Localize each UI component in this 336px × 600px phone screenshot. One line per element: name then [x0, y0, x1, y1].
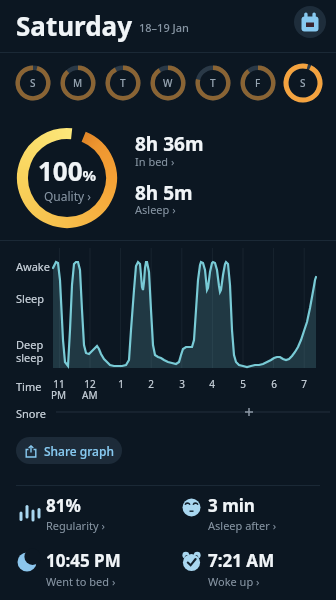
staticText: 3 min [208, 494, 255, 517]
staticText: 6 [271, 377, 277, 391]
staticText: Regularity › [46, 518, 105, 533]
staticText: Sleep [16, 291, 45, 306]
staticText: W [163, 76, 173, 90]
button[interactable]: M [58, 63, 98, 103]
staticText: 7:21 AM [208, 549, 275, 572]
staticText: 18–19 Jan [139, 20, 189, 35]
staticText: In bed › [135, 154, 175, 169]
staticText: Quality › [44, 188, 92, 204]
staticText: 81% [46, 494, 81, 517]
button[interactable] [16, 547, 156, 591]
button[interactable]: S [283, 63, 323, 103]
staticText: 12 [84, 377, 96, 391]
staticText: Asleep › [135, 202, 176, 217]
staticText: S [30, 76, 36, 90]
staticText: Saturday [16, 8, 133, 43]
staticText: 7 [301, 377, 307, 391]
staticText: Snore [16, 406, 47, 421]
button[interactable] [135, 130, 255, 174]
staticText: Woke up › [208, 574, 260, 589]
staticText: T [210, 76, 216, 90]
staticText: 2 [148, 377, 154, 391]
button[interactable]: S [13, 63, 53, 103]
staticText: 3 [179, 377, 185, 391]
staticText: S [300, 76, 306, 90]
button[interactable]: W [148, 63, 188, 103]
staticText: F [255, 76, 261, 90]
staticText: 11 [53, 377, 65, 391]
staticText: 5 [240, 377, 246, 391]
staticText: T [120, 76, 126, 90]
staticText: 1 [118, 377, 124, 391]
staticText: 4 [209, 377, 215, 391]
button[interactable]: T [193, 63, 233, 103]
staticText: Awake [16, 259, 50, 274]
staticText: 10:45 PM [46, 549, 121, 572]
button[interactable]: Share graph [16, 437, 122, 464]
staticText: 8h 5m [135, 180, 193, 206]
button[interactable] [180, 492, 320, 536]
staticText: Time [16, 379, 42, 394]
button[interactable] [16, 492, 156, 536]
staticText: Went to bed › [46, 574, 116, 589]
staticText: Asleep after › [208, 518, 277, 533]
button[interactable]: F [238, 63, 278, 103]
staticText: 8h 36m [135, 131, 204, 157]
staticText: AM [82, 388, 98, 402]
staticText: M [73, 76, 83, 90]
button[interactable] [294, 6, 326, 38]
button[interactable] [180, 547, 320, 591]
staticText: Deep sleep [16, 337, 44, 365]
staticText: 100% [38, 153, 97, 188]
button[interactable]: 100% [17, 128, 117, 228]
staticText: PM [51, 388, 67, 402]
staticText: Share graph [44, 443, 114, 459]
button[interactable] [135, 179, 255, 223]
button[interactable]: T [103, 63, 143, 103]
